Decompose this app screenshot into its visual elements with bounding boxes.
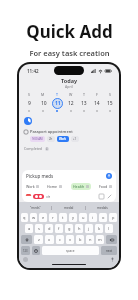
staticText: 9:00 AM (32, 137, 43, 141)
staticText: Health (73, 184, 85, 189)
button[interactable]: medal (52, 204, 85, 211)
button[interactable]: b (76, 235, 84, 244)
staticText: a (28, 226, 31, 231)
button[interactable]: Globe (23, 257, 28, 262)
button[interactable]: q (21, 213, 28, 222)
button[interactable]: h (75, 224, 83, 233)
button[interactable]: p (109, 213, 117, 222)
button[interactable]: m (96, 235, 104, 244)
button[interactable] (35, 195, 42, 198)
staticText: Pickup meds (26, 173, 54, 179)
staticText: k (98, 226, 101, 231)
staticText: w (32, 215, 36, 220)
other: Date (26, 194, 31, 199)
staticText: Work (59, 137, 67, 141)
staticText: 12 (68, 100, 74, 107)
staticText: j (88, 226, 90, 231)
button[interactable]: x (45, 235, 54, 244)
button[interactable]: Home (47, 184, 62, 189)
button[interactable]: z (34, 235, 43, 244)
staticText: m (98, 237, 102, 242)
staticText: 2h (49, 137, 53, 141)
button[interactable]: l (105, 224, 113, 233)
staticText: g (68, 226, 71, 231)
other: Keyboard (99, 194, 104, 199)
button[interactable]: W (64, 92, 77, 112)
staticText: 13 (81, 100, 87, 107)
button[interactable]: i (89, 213, 97, 222)
button[interactable]: n (86, 235, 94, 244)
button[interactable]: r (49, 213, 57, 222)
button[interactable]: w (30, 213, 37, 222)
button[interactable]: 123 (21, 246, 30, 255)
staticText: f (58, 226, 60, 231)
button[interactable]: a (25, 224, 33, 233)
button[interactable]: g (65, 224, 73, 233)
staticText: 14 (94, 100, 100, 107)
staticText: 123 (23, 249, 28, 253)
button[interactable]: t (59, 213, 67, 222)
staticText: medal (64, 206, 74, 210)
staticText: medals (97, 206, 108, 210)
button[interactable]: 2h (49, 137, 53, 141)
staticText: z (38, 237, 40, 242)
button[interactable]: S (22, 92, 36, 112)
staticText: h (78, 226, 81, 231)
button[interactable]: s (35, 224, 43, 233)
staticText: Quick Add (26, 20, 113, 43)
button[interactable]: o (99, 213, 107, 222)
button[interactable]: Work (59, 137, 67, 141)
button[interactable]: c (56, 235, 64, 244)
staticText: +1 (73, 137, 77, 141)
button[interactable]: Work (26, 184, 39, 189)
staticText: S (109, 92, 111, 97)
button[interactable]: M (36, 92, 50, 112)
staticText: 15 (107, 100, 113, 107)
button[interactable]: f (55, 224, 63, 233)
button[interactable]: k (95, 224, 103, 233)
staticText: e (42, 215, 45, 220)
staticText: l (108, 226, 110, 231)
button[interactable]: j (85, 224, 93, 233)
button[interactable]: e (39, 213, 47, 222)
button[interactable]: next (101, 246, 117, 255)
staticText: Food (99, 184, 108, 189)
button[interactable]: emoji (32, 246, 40, 255)
staticText: p (112, 215, 115, 220)
staticText: o (102, 215, 105, 220)
button[interactable]: +1 (73, 137, 77, 141)
button[interactable]: T (77, 92, 90, 112)
staticText: 10 (41, 100, 47, 107)
other: Expand (107, 194, 112, 199)
staticText: Today (61, 77, 78, 84)
button[interactable]: T (50, 92, 64, 112)
staticText: r (52, 215, 54, 220)
button[interactable]: medals (86, 204, 119, 211)
staticText: S (28, 92, 30, 97)
button[interactable]: v (66, 235, 74, 244)
button[interactable]: Health (73, 184, 89, 189)
button[interactable]: F (90, 92, 103, 112)
staticText: next (106, 249, 113, 253)
button[interactable]: y (69, 213, 77, 222)
staticText: F (96, 92, 98, 97)
button[interactable]: S (103, 92, 116, 112)
button[interactable]: Submit (106, 173, 112, 179)
staticText: April (65, 84, 73, 89)
staticText: Work (26, 184, 35, 189)
staticText: 11 (55, 100, 61, 107)
staticText: b (79, 237, 82, 242)
button[interactable]: d (45, 224, 53, 233)
button[interactable]: Food (99, 184, 112, 189)
button[interactable]: backspace (106, 235, 117, 244)
button[interactable]: shift (21, 235, 32, 244)
staticText: space (66, 249, 75, 253)
button[interactable]: space (42, 246, 99, 255)
button[interactable]: 9:00 AM (32, 137, 43, 141)
staticText: Home (47, 184, 58, 189)
staticText: d (48, 226, 51, 231)
button[interactable]: "meds" (19, 204, 51, 211)
staticText: Completed (24, 146, 43, 151)
button[interactable]: u (79, 213, 87, 222)
staticText: t (62, 215, 64, 220)
